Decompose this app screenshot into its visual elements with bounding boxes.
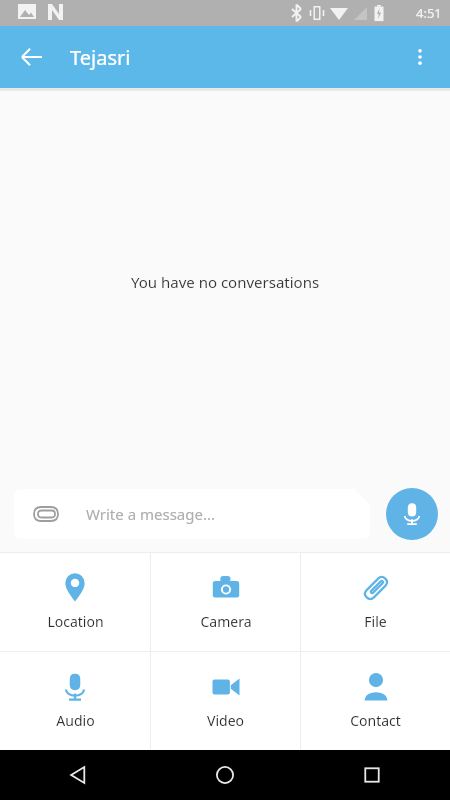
staticText: 4:51 xyxy=(416,4,442,22)
staticText: Tejasri xyxy=(70,44,131,71)
button[interactable]: Home xyxy=(203,753,247,797)
staticText: Audio xyxy=(56,711,95,730)
staticText: You have no conversations xyxy=(131,272,320,292)
button[interactable]: Video xyxy=(151,652,300,750)
button[interactable]: Back xyxy=(8,33,56,81)
staticText: Camera xyxy=(200,612,252,631)
button[interactable]: Recent apps xyxy=(350,753,394,797)
button[interactable]: Attach xyxy=(28,496,64,532)
button[interactable]: More options xyxy=(396,33,444,81)
button[interactable]: Attach xyxy=(14,489,370,539)
button[interactable]: Contact xyxy=(301,652,450,750)
staticText: Location xyxy=(47,612,104,631)
staticText: Video xyxy=(207,711,244,730)
button[interactable]: Back xyxy=(56,753,100,797)
staticText: Contact xyxy=(350,711,401,730)
staticText: Write a message... xyxy=(86,504,215,524)
staticText: File xyxy=(364,612,387,631)
button[interactable]: File xyxy=(301,553,450,651)
button[interactable]: Audio xyxy=(0,652,150,750)
button[interactable]: Record voice message xyxy=(386,488,438,540)
button[interactable]: Camera xyxy=(151,553,300,651)
button[interactable]: Location xyxy=(0,553,150,651)
